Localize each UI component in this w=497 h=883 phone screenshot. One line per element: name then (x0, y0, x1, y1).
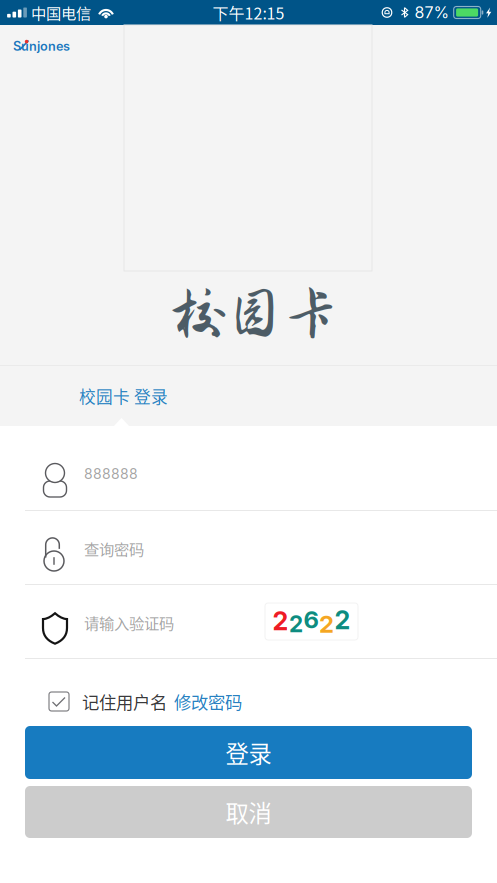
button[interactable]: 校园卡 登录 (0, 366, 497, 426)
staticText: 2 (319, 609, 334, 638)
staticText: 87% (414, 3, 449, 22)
staticText: 888888 (84, 465, 138, 482)
button[interactable]: 取消 (25, 786, 472, 838)
staticText: 请输入验证码 (84, 611, 174, 634)
staticText: 记住用户名 (82, 689, 167, 714)
button[interactable]: 登录 (25, 726, 472, 779)
staticText: Sunjones (13, 38, 70, 54)
staticText: 校园卡 (170, 283, 338, 345)
button[interactable]: 查询密码 (0, 511, 497, 584)
button[interactable]: 修改密码 (167, 659, 242, 726)
staticText: 下午12:15 (212, 1, 284, 24)
staticText: 校园卡 登录 (79, 384, 168, 408)
button[interactable]: 请输入验证码 (0, 585, 497, 658)
button[interactable]: 888888 (0, 426, 497, 510)
button[interactable]: 记住用户名 (0, 659, 167, 726)
staticText: 修改密码 (174, 689, 242, 714)
staticText: 2 (289, 610, 303, 638)
staticText: 登录 (225, 736, 271, 769)
staticText: 中国电信 (31, 1, 91, 24)
staticText: 2 (272, 606, 288, 636)
staticText: 6 (303, 605, 318, 634)
staticText: 查询密码 (84, 537, 144, 560)
staticText: 取消 (225, 795, 271, 829)
staticText: 2 (334, 605, 350, 635)
